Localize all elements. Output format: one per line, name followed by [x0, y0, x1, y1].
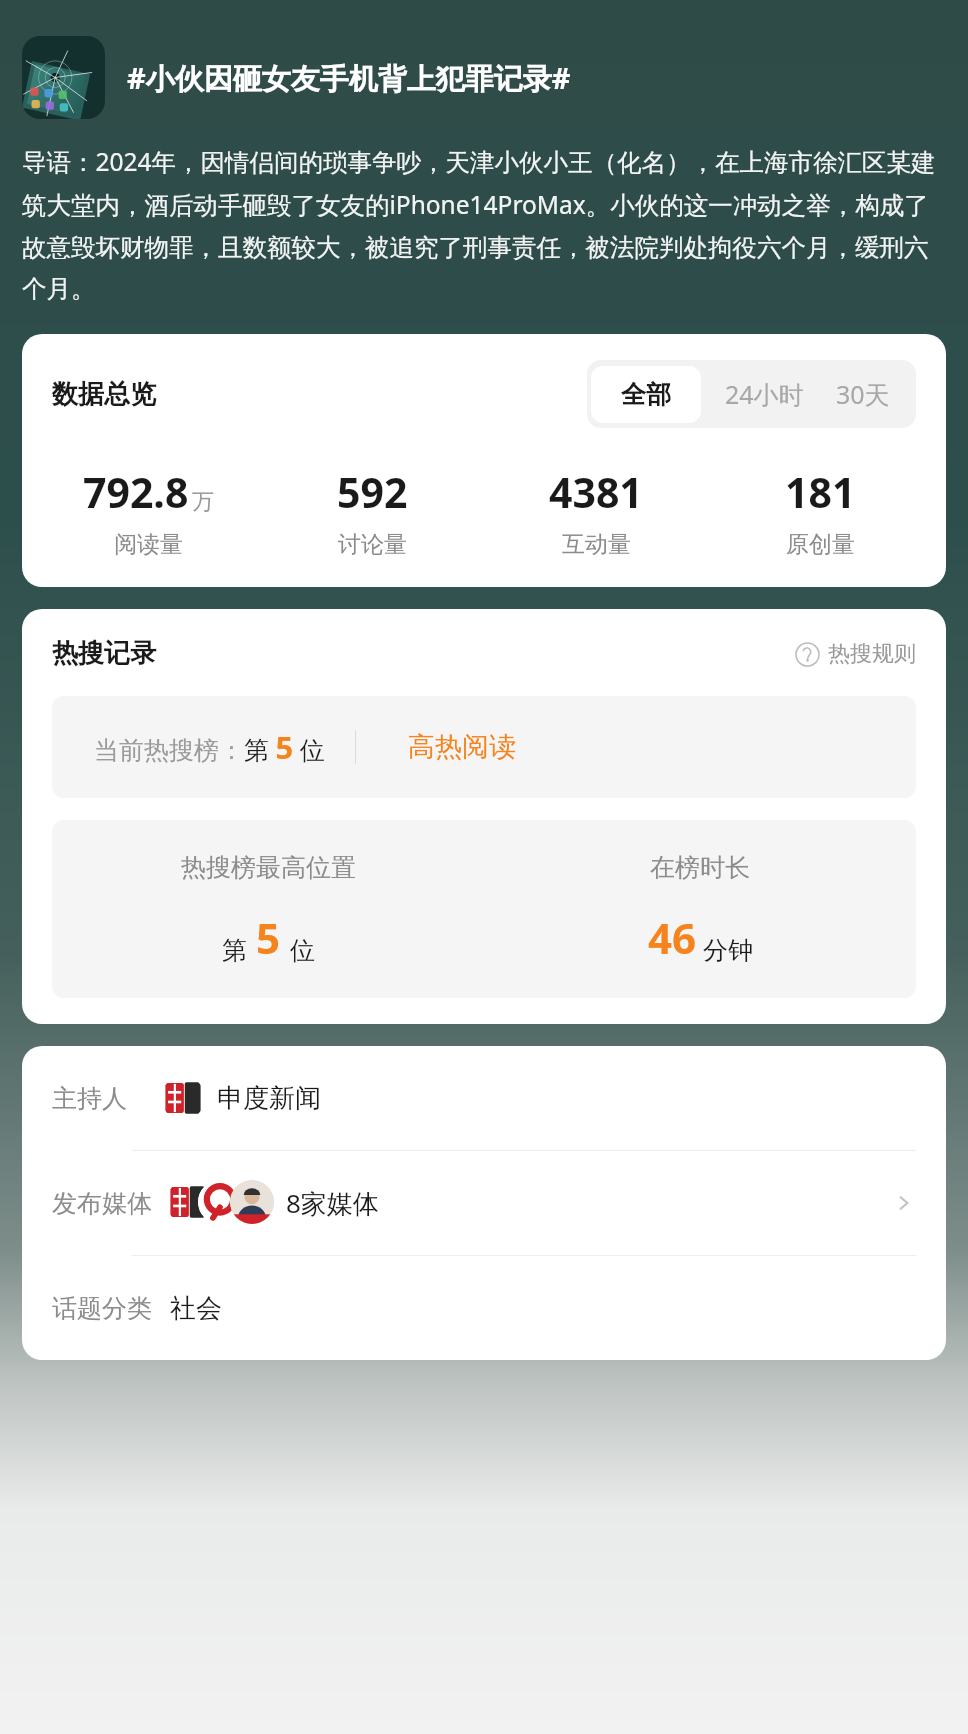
other: 查看全部媒体: [892, 1191, 916, 1215]
staticText: 导语：2024年，因情侣间的琐事争吵，天津小伙小王（化名），在上海市徐汇区某建筑…: [22, 145, 946, 304]
staticText: 热搜记录: [52, 637, 156, 670]
button[interactable]: 792.8: [36, 464, 260, 559]
staticText: 高热阅读: [408, 730, 516, 764]
button[interactable]: 主持人: [22, 1046, 946, 1150]
staticText: 位: [290, 935, 315, 966]
button[interactable]: 当前热搜榜：第 5 位: [52, 696, 916, 798]
other: 热搜规则说明: [795, 642, 820, 667]
button[interactable]: 24小时: [705, 360, 824, 428]
button[interactable]: 热搜榜最高位置: [52, 820, 916, 998]
button[interactable]: 592: [260, 464, 484, 559]
button[interactable]: 发布媒体: [22, 1151, 946, 1255]
staticText: 全部: [621, 379, 671, 410]
staticText: 热搜规则: [828, 640, 916, 668]
staticText: 分钟: [703, 935, 753, 966]
button[interactable]: 4381: [484, 464, 708, 559]
staticText: 发布媒体: [52, 1188, 152, 1219]
staticText: 181: [785, 464, 856, 520]
button[interactable]: 30天: [824, 360, 916, 428]
staticText: 5: [256, 909, 281, 966]
staticText: 当前热搜榜：第 5 位: [94, 726, 325, 768]
button[interactable]: 话题配图: [22, 36, 105, 119]
staticText: 792.8: [83, 464, 189, 520]
staticText: 第: [222, 935, 247, 966]
staticText: 热搜榜最高位置: [181, 852, 356, 883]
staticText: 阅读量: [114, 530, 183, 559]
staticText: 互动量: [562, 530, 631, 559]
staticText: 讨论量: [338, 530, 407, 559]
staticText: 申度新闻: [217, 1082, 321, 1115]
staticText: 话题分类: [52, 1293, 152, 1324]
staticText: 数据总览: [52, 378, 156, 411]
staticText: 4381: [549, 464, 643, 520]
button[interactable]: 全部: [591, 366, 701, 423]
staticText: 46: [648, 909, 697, 966]
staticText: 8家媒体: [286, 1185, 379, 1221]
staticText: 24小时: [725, 377, 804, 411]
staticText: 万: [192, 488, 214, 516]
button[interactable]: 话题分类: [22, 1256, 946, 1360]
button[interactable]: 热搜规则说明: [795, 640, 916, 668]
staticText: 社会: [170, 1292, 222, 1325]
staticText: 主持人: [52, 1083, 127, 1114]
staticText: 原创量: [786, 530, 855, 559]
staticText: 30天: [836, 377, 890, 411]
staticText: 592: [337, 464, 408, 520]
staticText: 在榜时长: [650, 852, 750, 883]
button[interactable]: 181: [708, 464, 932, 559]
staticText: #小伙因砸女友手机背上犯罪记录#: [127, 58, 571, 98]
